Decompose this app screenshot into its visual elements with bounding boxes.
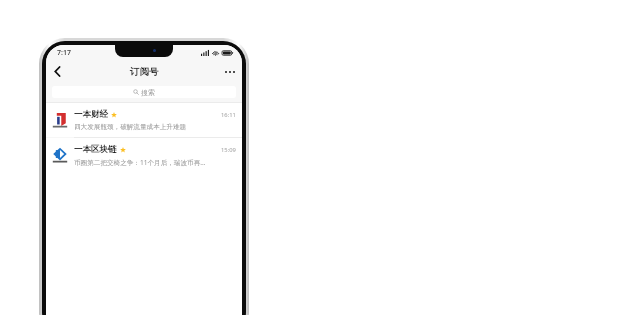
- staticText: 16:11: [221, 111, 236, 119]
- button[interactable]: 一本区块链: [46, 138, 242, 172]
- button[interactable]: Back: [46, 61, 68, 82]
- staticText: 币圈第二把交椅之争：11个月后，瑞波币再...: [74, 158, 206, 167]
- staticText: 一本区块链: [74, 144, 117, 155]
- button[interactable]: 搜索: [52, 86, 236, 98]
- staticText: 订阅号: [130, 66, 159, 78]
- button[interactable]: 一本财经: [46, 103, 242, 137]
- staticText: 15:09: [221, 146, 236, 154]
- button[interactable]: More options: [218, 61, 242, 82]
- staticText: 一本财经: [74, 109, 108, 120]
- staticText: 四大发展瓶颈，破解流量成本上升难题: [74, 123, 187, 131]
- staticText: 搜索: [141, 88, 155, 97]
- staticText: 7:17: [57, 48, 71, 58]
